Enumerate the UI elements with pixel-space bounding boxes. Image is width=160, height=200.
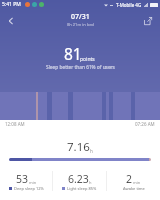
staticText: 2 [126, 172, 133, 186]
button[interactable]: Back [3, 13, 19, 29]
staticText: T-Mobile 4G [116, 2, 142, 8]
staticText: 12:08 AM [5, 121, 25, 127]
staticText: 7.16 [67, 139, 90, 155]
button[interactable]: Share [140, 13, 156, 29]
staticText: 07/31 [71, 12, 90, 22]
staticText: min [29, 180, 37, 185]
staticText: Deep sleep 12% [14, 186, 44, 191]
button[interactable]: 2 [107, 171, 160, 192]
staticText: 8h 21m in bed [67, 22, 94, 27]
button[interactable]: 6.23 [53, 171, 106, 192]
staticText: h [90, 148, 93, 154]
staticText: 53 [16, 172, 29, 186]
staticText: 5:41 PM [2, 1, 21, 8]
staticText: 07:26 AM [135, 121, 155, 127]
staticText: min [133, 180, 141, 185]
button[interactable]: 53 [0, 171, 52, 192]
staticText: Light sleep 85% [67, 186, 97, 191]
staticText: 6.23 [68, 172, 89, 186]
staticText: Awake time [123, 186, 145, 191]
staticText: points [80, 56, 95, 63]
staticText: 81 [64, 43, 82, 64]
staticText: Sleep better than 61% of users [46, 64, 115, 71]
staticText: h [89, 180, 92, 185]
